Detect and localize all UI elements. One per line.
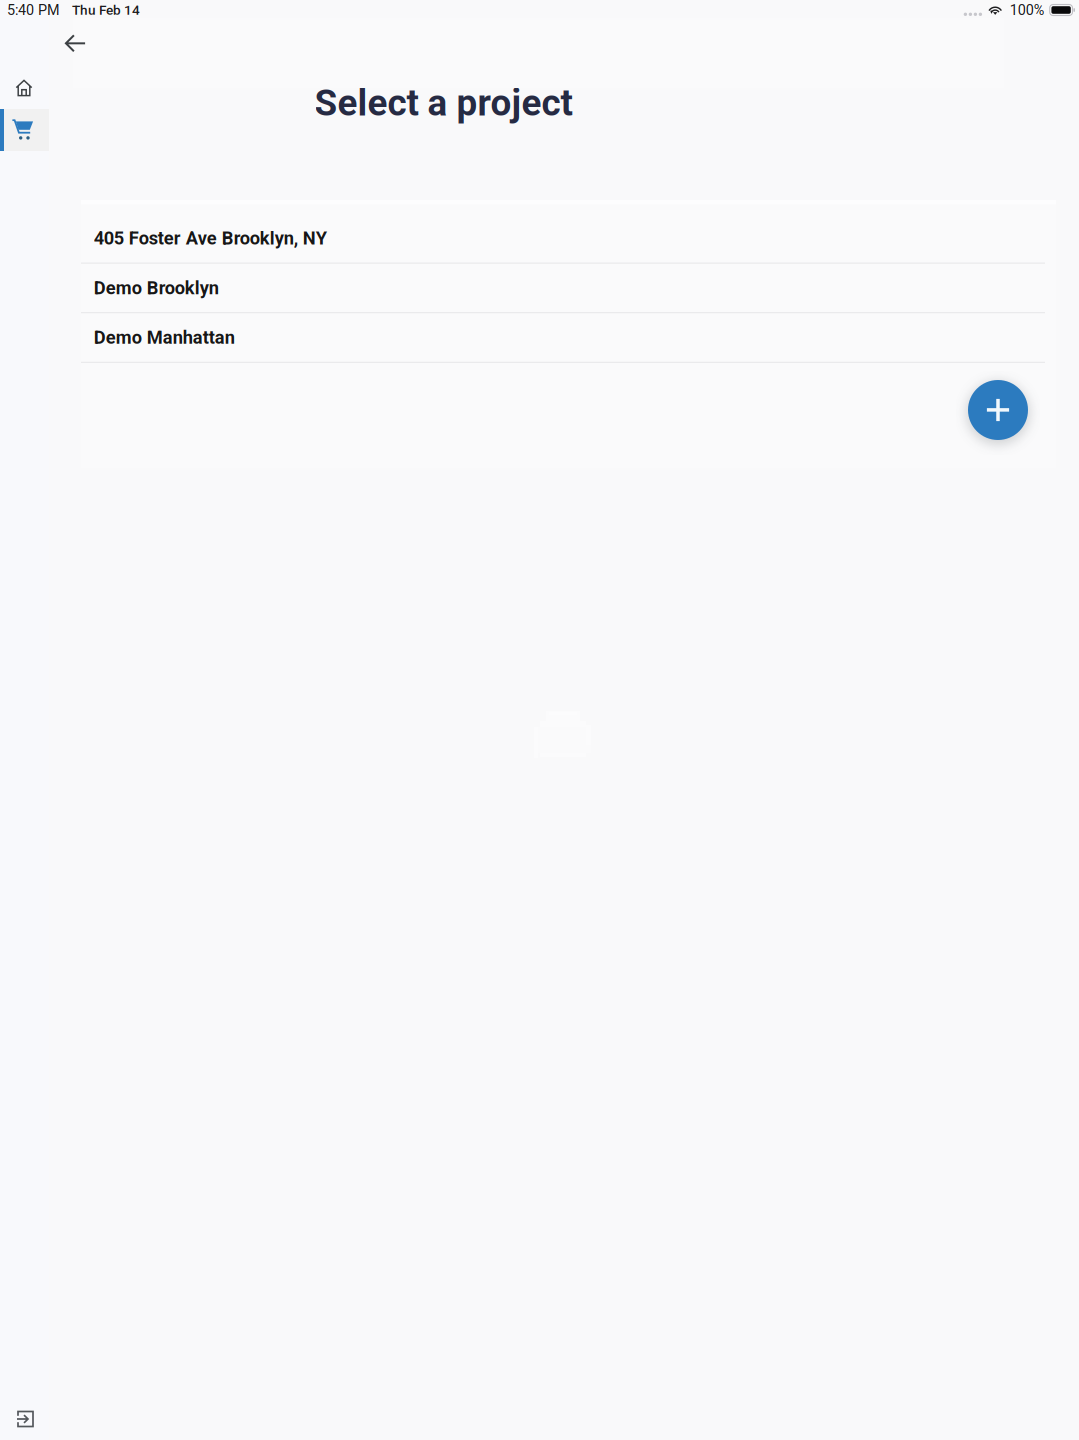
staticText: Select a project bbox=[314, 81, 572, 124]
staticText: 405 Foster Ave Brooklyn, NY bbox=[94, 228, 327, 249]
button[interactable]: Demo Brooklyn bbox=[81, 264, 1056, 313]
button[interactable]: Orders bbox=[0, 109, 49, 151]
button[interactable]: Home bbox=[0, 67, 49, 109]
staticText: 100% bbox=[1010, 2, 1045, 18]
staticText: Demo Brooklyn bbox=[94, 277, 219, 299]
staticText: 5:40 PM bbox=[7, 2, 60, 18]
button[interactable]: Add project bbox=[968, 380, 1028, 440]
button[interactable]: 405 Foster Ave Brooklyn, NY bbox=[81, 214, 1056, 264]
button[interactable]: Back bbox=[53, 21, 97, 65]
button[interactable]: Sign out bbox=[0, 1395, 49, 1439]
staticText: Demo Manhattan bbox=[94, 327, 235, 348]
button[interactable]: Demo Manhattan bbox=[81, 313, 1056, 363]
staticText: Thu Feb 14 bbox=[72, 2, 140, 18]
